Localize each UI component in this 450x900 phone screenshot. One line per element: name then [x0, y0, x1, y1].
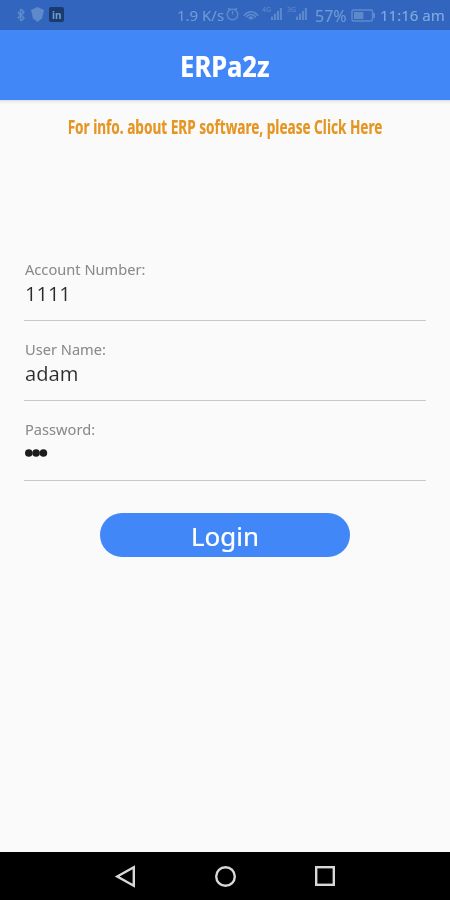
button[interactable]: Recents: [301, 852, 349, 900]
button[interactable]: Login: [100, 513, 350, 557]
staticText: 3G: [287, 5, 297, 15]
staticText: User Name:: [25, 339, 107, 359]
button[interactable]: For info. about ERP software, please Cli…: [0, 113, 450, 140]
button[interactable]: Back: [101, 852, 149, 900]
staticText: Password:: [25, 419, 95, 439]
staticText: 4G: [262, 5, 272, 15]
staticText: adam: [25, 360, 79, 387]
button[interactable]: Home: [201, 852, 249, 900]
staticText: 1111: [25, 280, 71, 307]
button[interactable]: User Name:: [0, 339, 450, 401]
staticText: in: [52, 8, 62, 22]
button[interactable]: Password:: [0, 419, 450, 481]
staticText: Account Number:: [25, 259, 146, 279]
staticText: 57%: [315, 5, 347, 27]
staticText: Login: [191, 518, 260, 553]
button[interactable]: Account Number:: [0, 259, 450, 321]
staticText: 1.9 K/s: [177, 5, 225, 25]
staticText: 11:16 am: [380, 5, 445, 25]
staticText: ERPa2z: [180, 46, 270, 85]
